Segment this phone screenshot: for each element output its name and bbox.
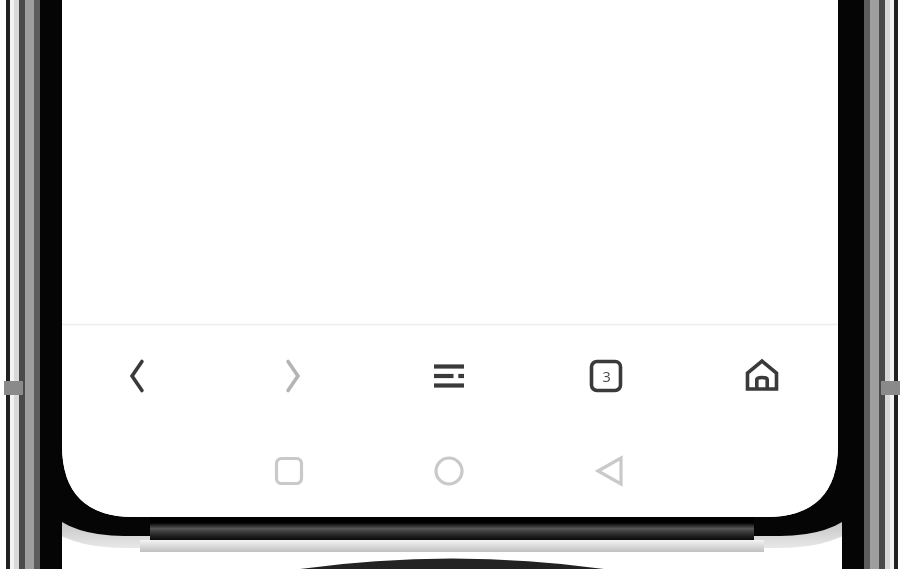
button[interactable]: Home xyxy=(738,352,786,400)
button[interactable]: Forward xyxy=(269,352,317,400)
button[interactable]: Navigate back xyxy=(586,447,634,495)
button[interactable]: Menu xyxy=(425,352,473,400)
button[interactable]: Back xyxy=(113,352,161,400)
button[interactable]: Home screen xyxy=(425,447,473,495)
button[interactable]: Recent apps xyxy=(265,447,313,495)
button[interactable]: Tabs, 3 open xyxy=(582,352,630,400)
staticText: 3 xyxy=(602,366,611,386)
